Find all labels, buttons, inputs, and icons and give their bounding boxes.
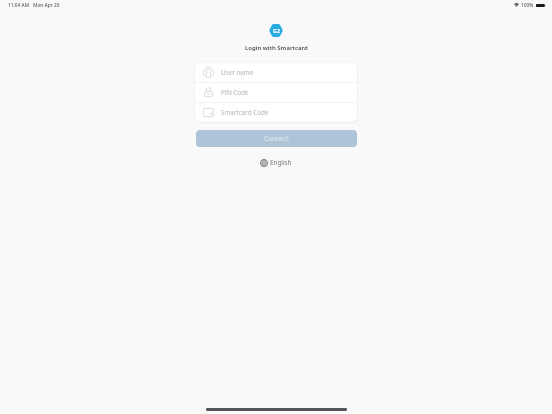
- staticText: PIN Code: [221, 88, 249, 97]
- other: Battery: [536, 4, 546, 7]
- staticText: 11:04 AM: [8, 2, 30, 9]
- staticText: English: [270, 158, 292, 167]
- staticText: Connect: [264, 134, 290, 143]
- staticText: Smartcard Code: [221, 108, 269, 117]
- button[interactable]: User name: [195, 63, 357, 82]
- staticText: G2: [273, 27, 280, 34]
- button[interactable]: English: [257, 156, 295, 169]
- other: App logo: [269, 24, 283, 37]
- staticText: 100%: [521, 2, 534, 9]
- other: Wi-Fi: [514, 3, 519, 7]
- staticText: Login with Smartcard: [245, 44, 308, 52]
- button[interactable]: PIN Code: [195, 83, 357, 102]
- staticText: Mon Apr 20: [33, 2, 60, 9]
- button[interactable]: Connect: [196, 130, 357, 147]
- button[interactable]: Smartcard Code: [195, 103, 357, 122]
- staticText: User name: [221, 68, 254, 77]
